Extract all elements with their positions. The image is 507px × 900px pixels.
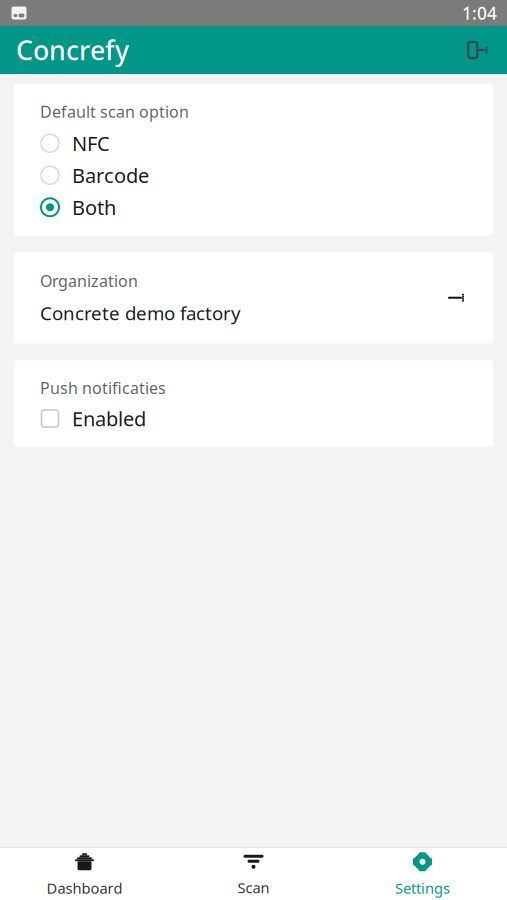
staticText: NFC <box>72 130 110 157</box>
staticText: Dashboard <box>46 878 122 898</box>
staticText: Concrefy <box>16 32 129 68</box>
staticText: 1:04 <box>462 1 497 24</box>
staticText: Both <box>72 194 116 221</box>
button[interactable]: Organization <box>14 252 493 343</box>
staticText: Enabled <box>72 405 146 432</box>
staticText: Organization <box>40 270 138 291</box>
button[interactable]: NFC <box>14 127 493 159</box>
button[interactable]: Settings <box>338 843 507 900</box>
button[interactable]: Scan <box>169 844 338 900</box>
button[interactable]: Log out <box>455 27 501 73</box>
staticText: Settings <box>395 878 450 898</box>
staticText: Scan <box>237 878 269 897</box>
staticText: Concrete demo factory <box>40 300 241 325</box>
staticText: Default scan option <box>40 101 189 122</box>
staticText: Barcode <box>72 162 149 189</box>
button[interactable]: Both <box>14 191 493 223</box>
button[interactable]: Dashboard <box>0 843 169 900</box>
staticText: Push notificaties <box>40 377 166 398</box>
button[interactable]: Barcode <box>14 159 493 191</box>
button[interactable]: Enabled <box>14 403 493 433</box>
